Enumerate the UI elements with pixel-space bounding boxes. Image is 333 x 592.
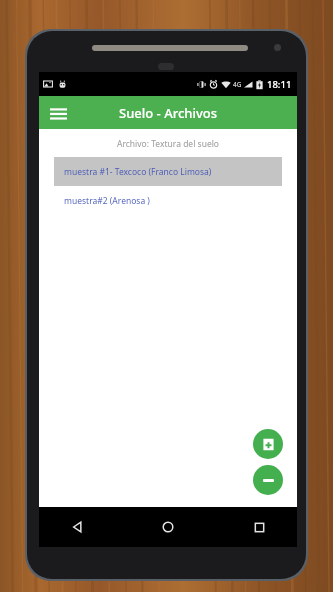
- staticText: Archivo: Textura del suelo: [39, 138, 297, 150]
- button[interactable]: muestra #1- Texcoco (Franco Limosa): [54, 157, 282, 186]
- staticText: Suelo - Archivos: [119, 104, 218, 122]
- button[interactable]: Remove sample: [253, 465, 283, 495]
- button[interactable]: Recent apps: [243, 511, 275, 543]
- staticText: 4G: [233, 80, 242, 89]
- staticText: muestra #1- Texcoco (Franco Limosa): [64, 166, 212, 178]
- button[interactable]: Back: [61, 511, 93, 543]
- staticText: 18:11: [267, 78, 292, 91]
- button[interactable]: Add sample: [253, 429, 283, 459]
- button[interactable]: Home: [152, 511, 184, 543]
- staticText: muestra#2 (Arenosa ): [64, 195, 150, 207]
- button[interactable]: muestra#2 (Arenosa ): [54, 186, 282, 215]
- button[interactable]: Open navigation menu: [43, 98, 73, 128]
